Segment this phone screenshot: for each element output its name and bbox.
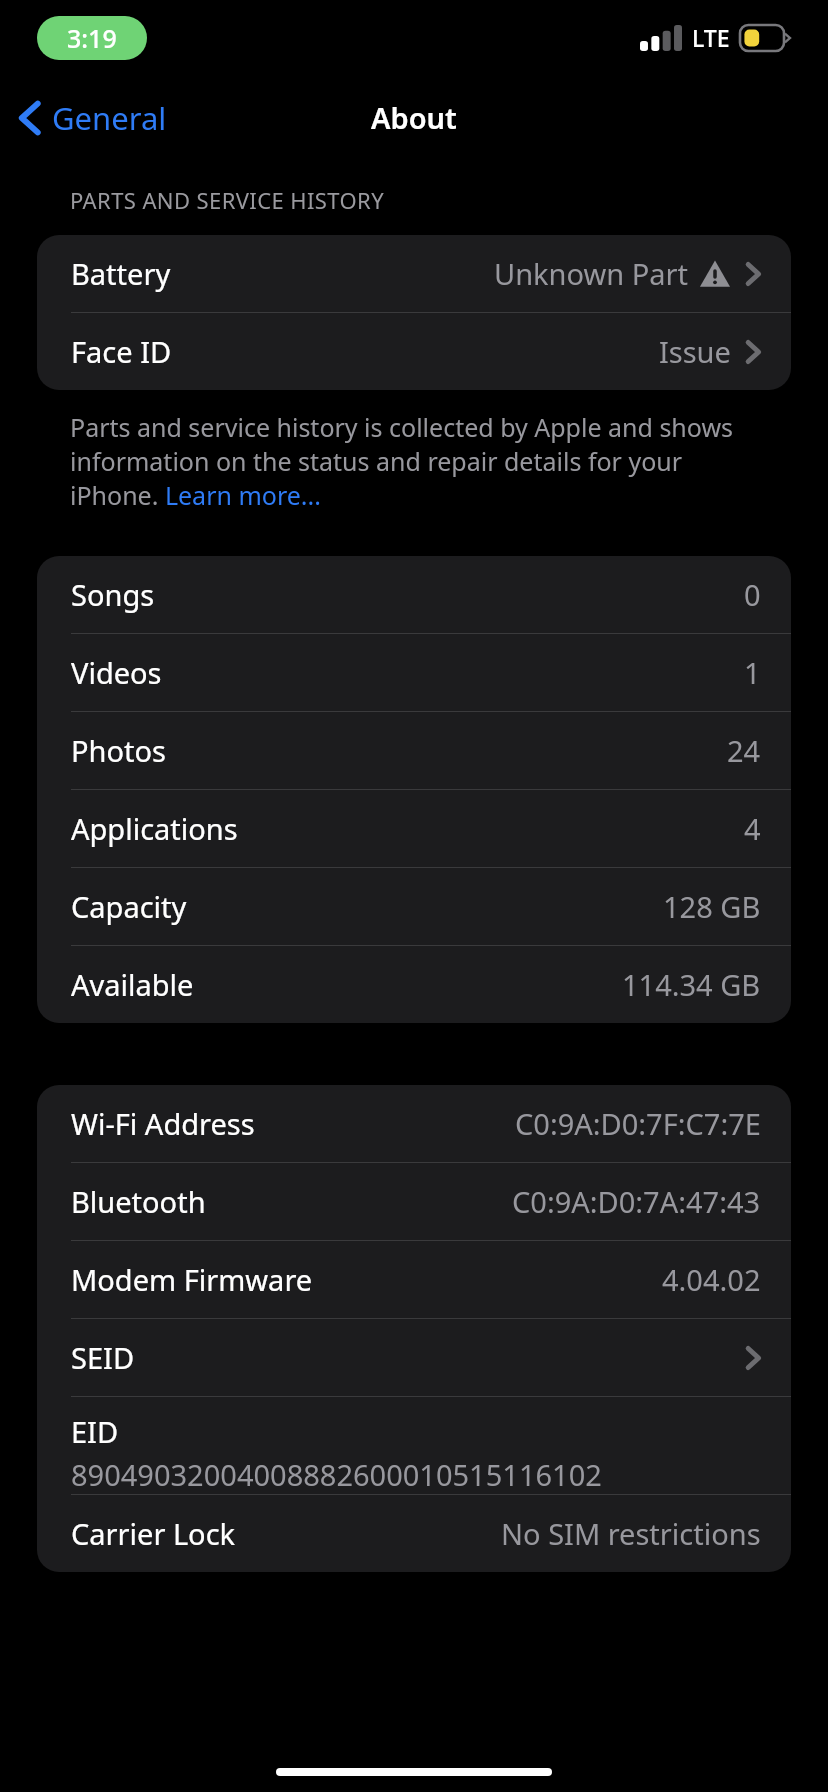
staticText: Bluetooth (71, 1182, 206, 1221)
staticText: Videos (71, 653, 162, 692)
button[interactable]: Battery (37, 235, 791, 313)
staticText: Battery (71, 254, 171, 293)
staticText: Issue (659, 332, 731, 371)
staticText: C0:9A:D0:7A:47:43 (512, 1182, 761, 1221)
staticText: About (371, 98, 457, 137)
button[interactable]: SEID (37, 1319, 791, 1397)
button[interactable]: Bluetooth (37, 1163, 791, 1241)
button[interactable]: Songs (37, 556, 791, 634)
staticText: 0 (744, 575, 761, 614)
button[interactable]: EID (37, 1397, 791, 1495)
button[interactable]: Photos (37, 712, 791, 790)
button[interactable]: Videos (37, 634, 791, 712)
staticText: 1 (744, 653, 761, 692)
staticText: Songs (71, 575, 155, 614)
staticText: Parts and service history is collected b… (70, 410, 770, 512)
button[interactable]: Available (37, 946, 791, 1023)
staticText: Applications (71, 809, 238, 848)
staticText: 24 (727, 731, 761, 770)
staticText: PARTS AND SERVICE HISTORY (70, 185, 384, 215)
staticText: Photos (71, 731, 166, 770)
staticText: Unknown Part (494, 254, 689, 293)
button[interactable]: Applications (37, 790, 791, 868)
staticText: 4 (744, 809, 761, 848)
staticText: Capacity (71, 887, 187, 926)
staticText: Available (71, 965, 194, 1004)
staticText: 4.04.02 (662, 1260, 761, 1299)
button[interactable]: Wi-Fi Address (37, 1085, 791, 1163)
staticText: 128 GB (663, 887, 761, 926)
staticText: 3:19 (67, 21, 117, 55)
staticText: General (52, 97, 167, 139)
staticText: Carrier Lock (71, 1514, 236, 1553)
button[interactable]: Capacity (37, 868, 791, 946)
button[interactable]: General (0, 75, 183, 160)
staticText: SEID (71, 1338, 135, 1377)
staticText: Wi-Fi Address (71, 1104, 255, 1143)
staticText: Modem Firmware (71, 1260, 313, 1299)
staticText: 114.34 GB (622, 965, 761, 1004)
staticText: EID (71, 1412, 119, 1451)
button[interactable]: Carrier Lock (37, 1495, 791, 1572)
staticText: Face ID (71, 332, 172, 371)
staticText: 89049032004008882600010515116102 (71, 1455, 602, 1494)
button[interactable]: Modem Firmware (37, 1241, 791, 1319)
staticText: No SIM restrictions (501, 1514, 761, 1553)
staticText: LTE (692, 22, 730, 53)
staticText: C0:9A:D0:7F:C7:7E (515, 1104, 761, 1143)
button[interactable]: Face ID (37, 313, 791, 390)
